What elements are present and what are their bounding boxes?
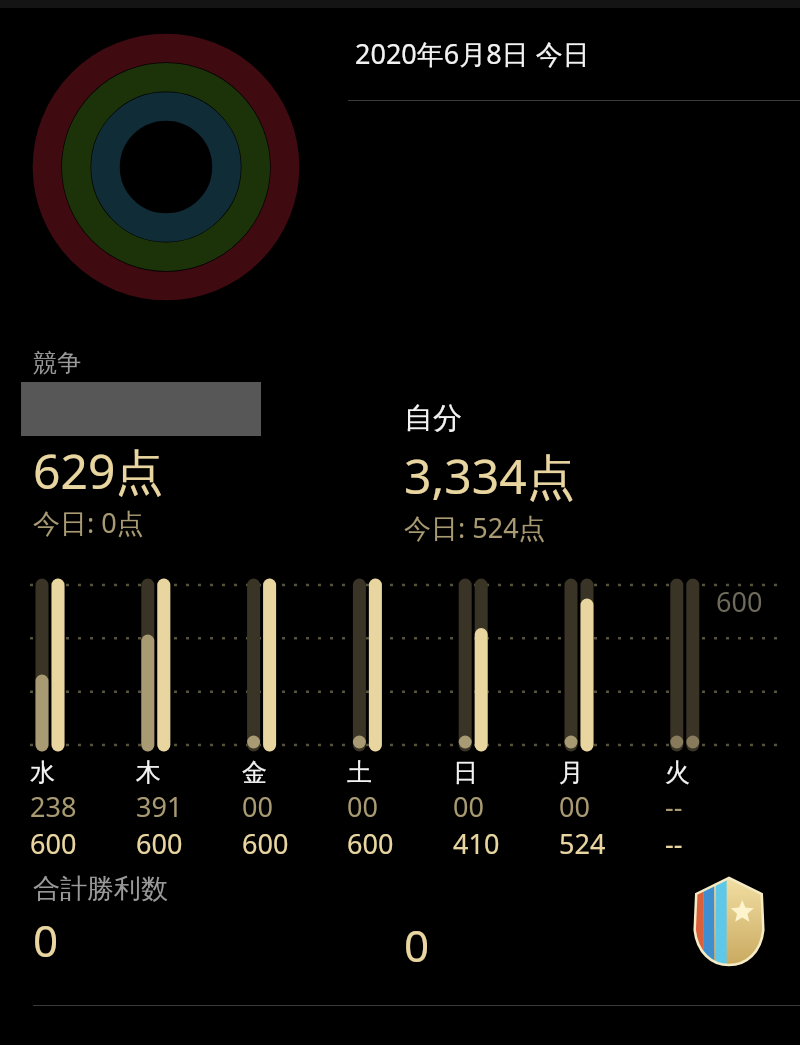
staticText: 日 <box>453 757 478 788</box>
staticText: 3,334点 <box>404 443 575 509</box>
button[interactable]: Activity rings <box>33 34 299 300</box>
staticText: 600 <box>347 825 394 862</box>
staticText: 600 <box>30 825 77 862</box>
staticText: 00 <box>347 788 378 825</box>
staticText: 競争 <box>33 348 81 378</box>
staticText: 月 <box>559 757 584 788</box>
staticText: 524 <box>559 825 606 862</box>
staticText: 391 <box>136 788 183 825</box>
staticText: 410 <box>453 825 500 862</box>
staticText: 今日: 0点 <box>33 504 144 541</box>
staticText: 今日: 524点 <box>404 509 546 546</box>
staticText: 238 <box>30 788 77 825</box>
staticText: 土 <box>347 757 372 788</box>
staticText: 金 <box>242 757 267 788</box>
staticText: 600 <box>136 825 183 862</box>
button[interactable]: Weekly competition chart <box>0 570 800 755</box>
staticText: 600 <box>242 825 289 862</box>
staticText: 水 <box>30 757 55 788</box>
staticText: 自分 <box>404 400 462 437</box>
staticText: 合計勝利数 <box>33 872 168 906</box>
staticText: 00 <box>453 788 484 825</box>
staticText: 2020年6月8日 今日 <box>355 35 590 72</box>
staticText: 火 <box>665 757 690 788</box>
staticText: 0 <box>33 910 59 970</box>
staticText: 00 <box>242 788 273 825</box>
staticText: 629点 <box>33 438 164 504</box>
button[interactable]: Award badge <box>690 876 768 966</box>
staticText: -- <box>665 788 683 825</box>
staticText: 00 <box>559 788 590 825</box>
staticText: -- <box>665 825 683 862</box>
staticText: 木 <box>136 757 161 788</box>
staticText: 0 <box>404 915 430 975</box>
staticText: 600 <box>716 583 763 620</box>
